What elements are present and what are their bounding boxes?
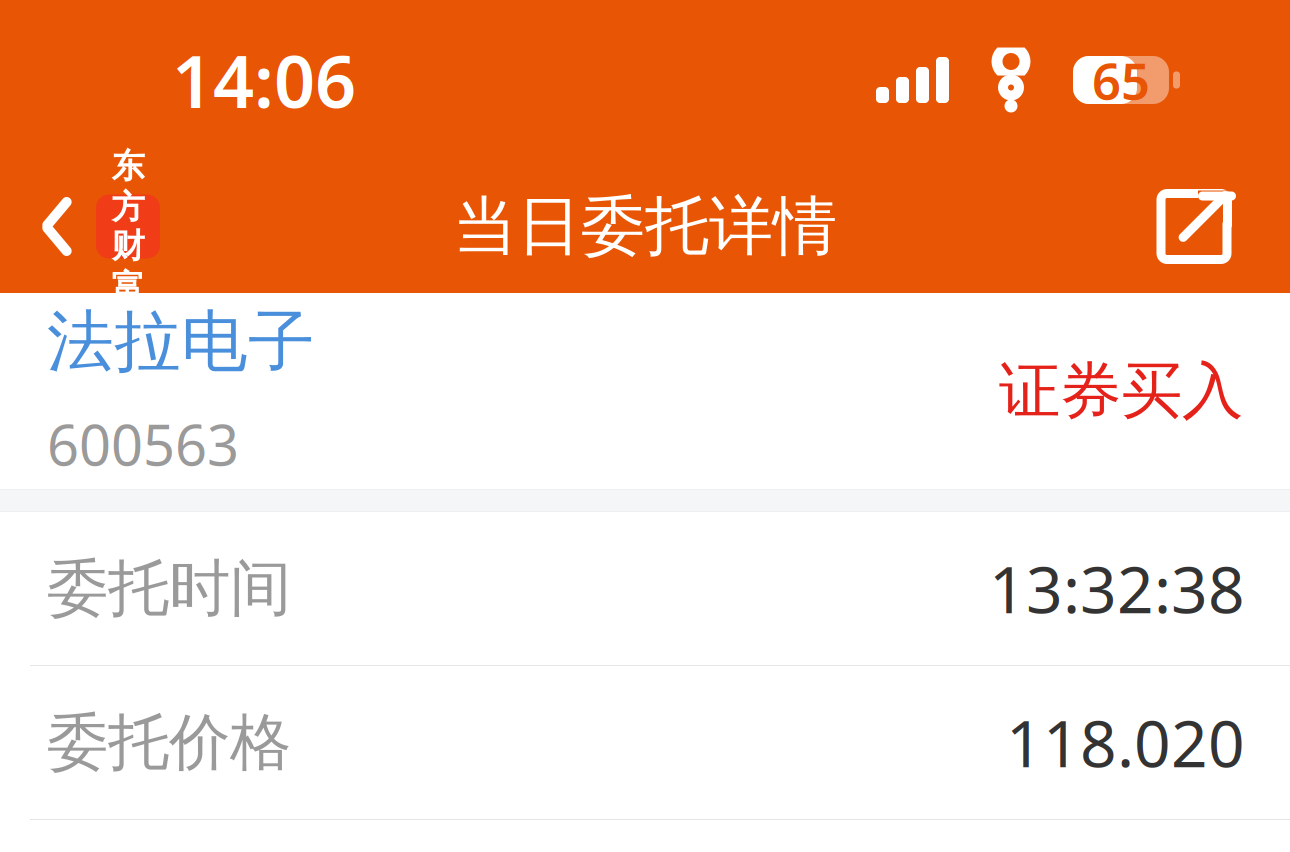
button[interactable]: 返回 东方财富 [0,160,178,292]
button[interactable]: 法拉电子 [0,293,1290,489]
staticText: 14:06 [172,32,356,128]
button[interactable]: 分享 [1127,160,1261,292]
staticText: 证券买入 [999,353,1243,429]
staticText: 财富 [111,225,144,307]
staticText: 委托时间 [47,551,291,626]
staticText: 13:32:38 [989,546,1245,631]
staticText: 法拉电子 [47,301,315,383]
staticText: 118.020 [1006,700,1245,785]
staticText: 65 [1092,46,1150,114]
staticText: 当日委托详情 [453,187,837,266]
staticText: 委托价格 [47,705,291,780]
staticText: 东方 [111,146,144,227]
staticText: 600563 [47,407,239,481]
